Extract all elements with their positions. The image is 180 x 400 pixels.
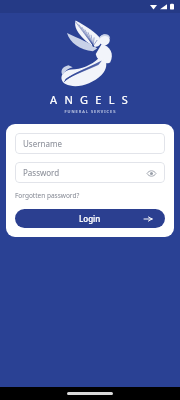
staticText: FUNERAL SERVICES	[64, 109, 117, 114]
staticText: Username	[23, 138, 62, 149]
button[interactable]: Show password	[145, 167, 157, 179]
staticText: Forgotten password?	[15, 191, 80, 200]
button[interactable]: Login	[15, 209, 165, 228]
button[interactable]: Forgotten password?	[15, 190, 80, 201]
staticText: Password	[23, 167, 60, 178]
staticText: Login	[79, 213, 101, 224]
button[interactable]: Username	[15, 133, 165, 154]
staticText: A N G E L S	[50, 92, 130, 107]
button[interactable]: Password	[15, 162, 165, 183]
